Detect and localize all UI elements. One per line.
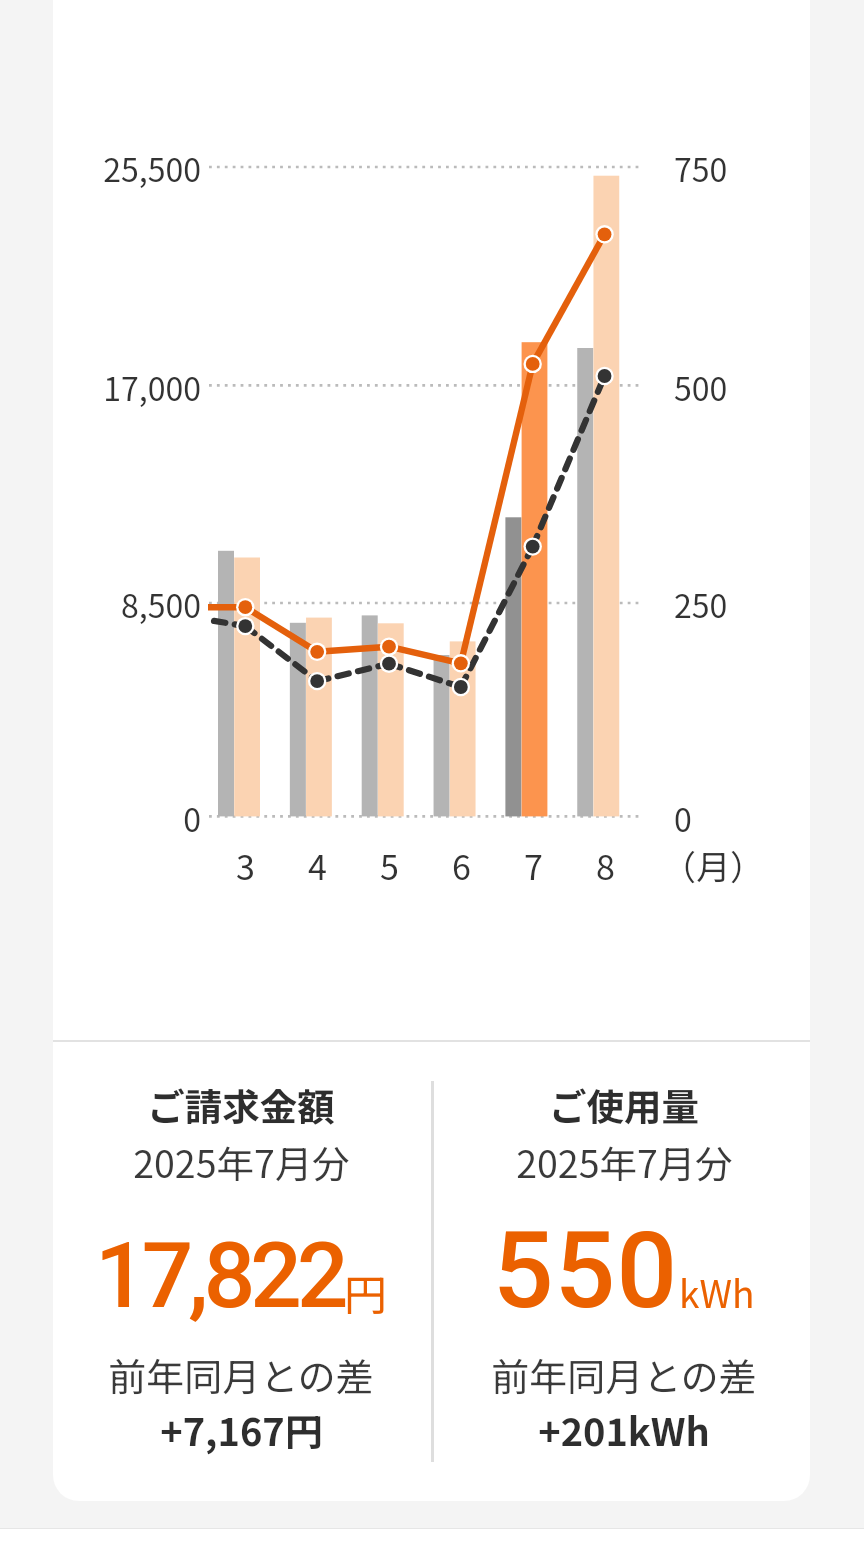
staticText: 17,000 xyxy=(53,364,201,410)
staticText: 550 xyxy=(493,1208,679,1333)
button[interactable]: ご請求金額 2025年7月分 17,822円 xyxy=(53,1042,431,1501)
staticText: 円 xyxy=(344,1261,387,1323)
staticText: 8 xyxy=(596,841,615,890)
button[interactable]: ご使用量 2025年7月分 550kWh xyxy=(431,1042,810,1501)
staticText: 5 xyxy=(380,841,399,890)
staticText: 750 xyxy=(674,145,728,191)
staticText: 6 xyxy=(452,841,471,890)
staticText: 250 xyxy=(674,581,728,627)
staticText: 0 xyxy=(53,795,201,841)
staticText: 前年同月との差 xyxy=(491,1347,757,1402)
staticText: 7 xyxy=(524,841,543,890)
staticText: ご請求金額 xyxy=(147,1077,335,1131)
staticText: kWh xyxy=(679,1265,755,1319)
staticText: 8,500 xyxy=(53,581,201,627)
staticText: 500 xyxy=(674,364,728,410)
staticText: ご使用量 xyxy=(549,1077,699,1131)
staticText: +201kWh xyxy=(538,1402,710,1457)
staticText: +7,167円 xyxy=(160,1402,323,1457)
staticText: 25,500 xyxy=(53,145,201,191)
staticText: 17,822 xyxy=(95,1223,344,1329)
staticText: （月） xyxy=(662,841,764,890)
staticText: 前年同月との差 xyxy=(108,1347,374,1402)
button[interactable]: 電気料金・使用量グラフ xyxy=(53,0,810,1040)
staticText: 4 xyxy=(308,841,327,890)
staticText: 2025年7月分 xyxy=(133,1134,350,1188)
staticText: 0 xyxy=(674,795,692,841)
staticText: 2025年7月分 xyxy=(516,1134,733,1188)
staticText: 3 xyxy=(236,841,255,890)
